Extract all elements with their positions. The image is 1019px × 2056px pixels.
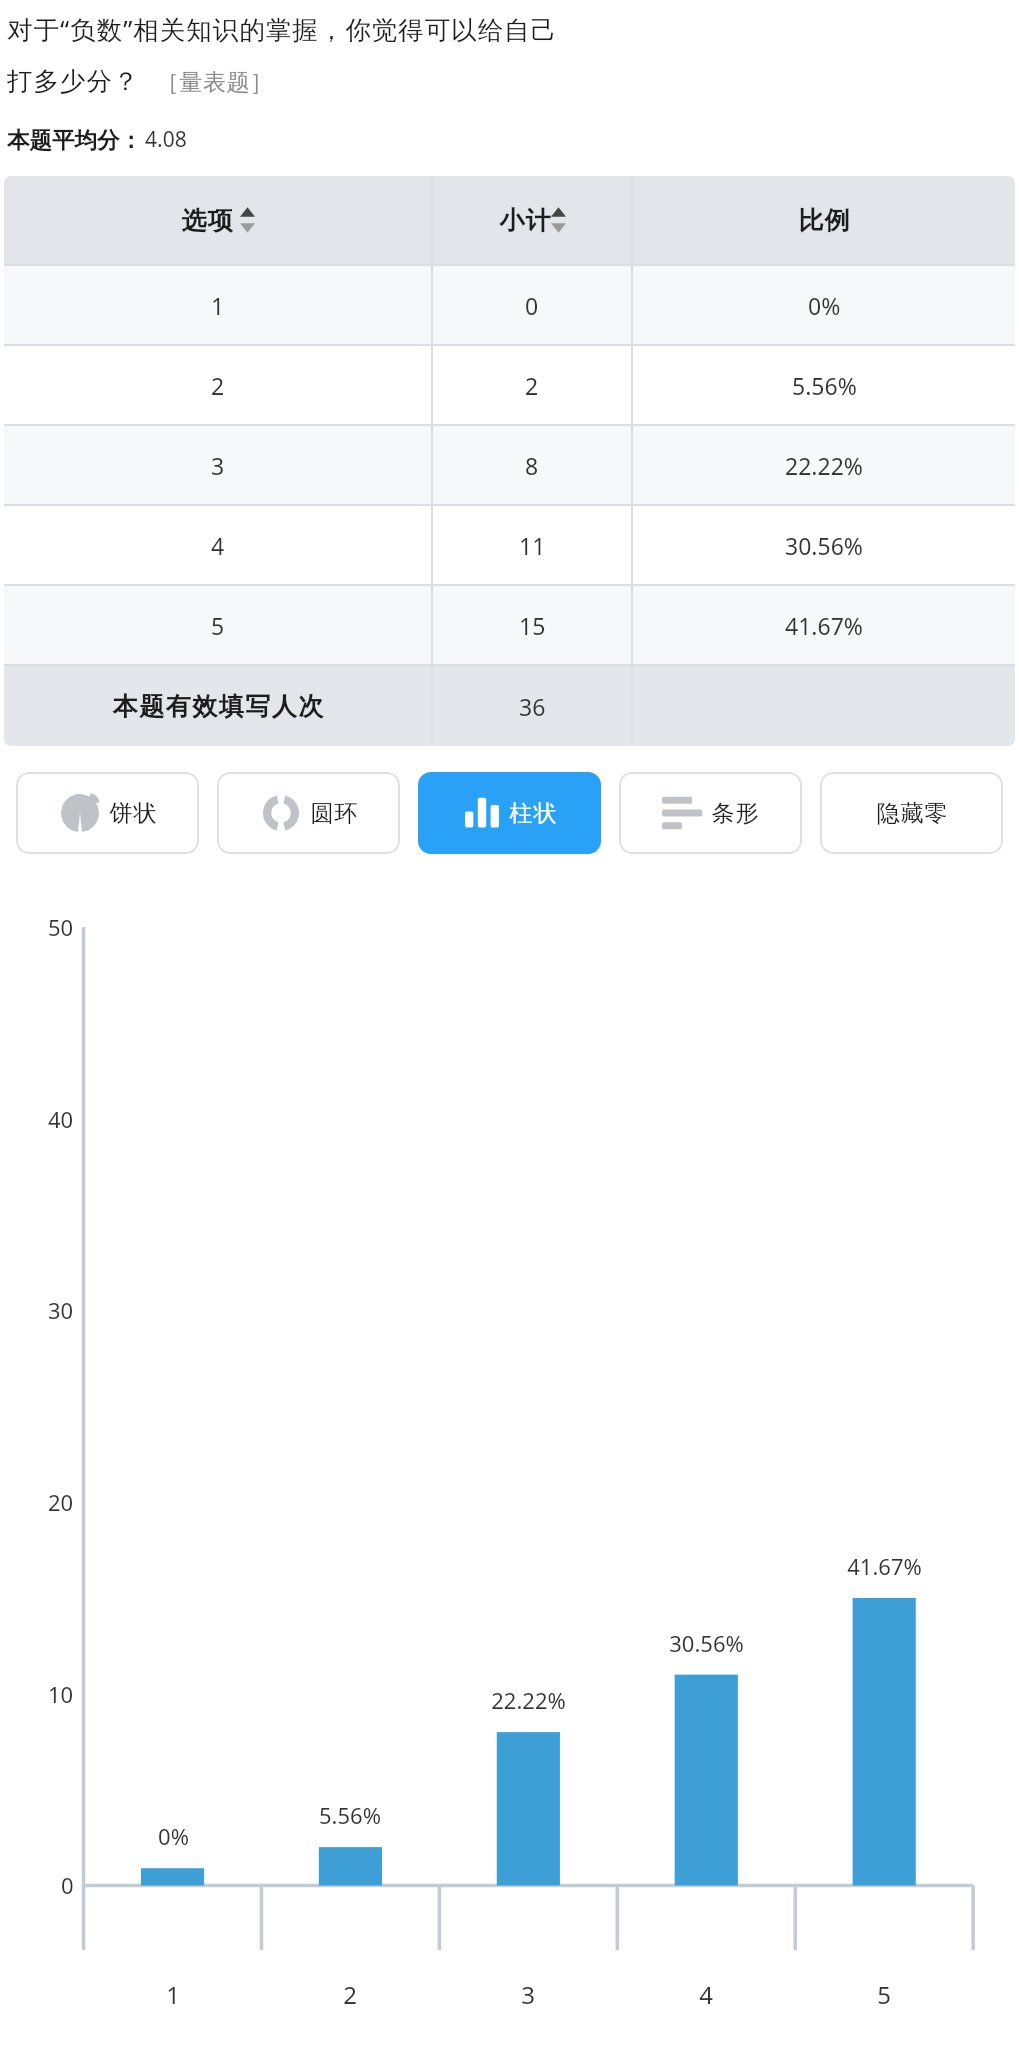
staticText: 30.56% (785, 530, 863, 561)
button[interactable]: 5 (4, 586, 1015, 664)
button[interactable]: 圆环 (217, 772, 400, 854)
staticText: 41.67% (847, 1551, 922, 1581)
staticText: 小计 (499, 205, 551, 236)
staticText: 2 (211, 370, 225, 401)
button[interactable]: 4 (4, 506, 1015, 584)
staticText: 隐藏零 (876, 799, 948, 828)
button[interactable]: 隐藏零 (820, 772, 1003, 854)
staticText: 22.22% (491, 1685, 566, 1715)
staticText: 0% (158, 1821, 189, 1851)
staticText: 柱状 (509, 799, 557, 828)
staticText: 3 (211, 450, 225, 481)
staticText: 条形 (711, 799, 759, 828)
button[interactable]: 1 (4, 266, 1015, 344)
button[interactable]: 柱状 (418, 772, 601, 854)
button[interactable]: 3 (4, 426, 1015, 504)
staticText: ［量表题］ (156, 68, 274, 97)
staticText: 圆环 (310, 799, 358, 828)
staticText: 30.56% (669, 1628, 744, 1658)
staticText: 5.56% (792, 370, 857, 401)
staticText: 1 (166, 1978, 180, 2011)
staticText: 5 (877, 1978, 891, 2011)
staticText: 11 (519, 530, 546, 561)
staticText: 饼状 (109, 799, 157, 828)
staticText: 1 (211, 290, 225, 321)
staticText: 4 (699, 1978, 713, 2011)
button[interactable]: 2 (4, 346, 1015, 424)
staticText: 30 (48, 1295, 74, 1325)
staticText: 0% (808, 290, 841, 321)
staticText: 比例 (798, 205, 850, 236)
staticText: 50 (48, 912, 74, 942)
staticText: 2 (343, 1978, 357, 2011)
staticText: 20 (48, 1487, 74, 1517)
staticText: 3 (521, 1978, 535, 2011)
staticText: 0 (61, 1870, 74, 1900)
staticText: 0 (525, 290, 539, 321)
staticText: 41.67% (785, 610, 863, 641)
staticText: 本题有效填写人次 (112, 691, 324, 722)
staticText: 对于“负数”相关知识的掌握，你觉得可以给自己 (7, 12, 558, 47)
staticText: 打多少分？ (7, 65, 140, 97)
staticText: 36 (519, 691, 546, 722)
staticText: 2 (525, 370, 539, 401)
staticText: 8 (525, 450, 539, 481)
button[interactable]: 选项 (4, 176, 1015, 264)
staticText: 10 (48, 1679, 74, 1709)
button[interactable]: 条形 (619, 772, 802, 854)
staticText: 4 (211, 530, 225, 561)
staticText: 5 (211, 610, 225, 641)
staticText: 本题平均分： (7, 126, 142, 154)
staticText: 22.22% (785, 450, 863, 481)
staticText: 15 (519, 610, 546, 641)
staticText: 40 (48, 1104, 74, 1134)
staticText: 选项 (181, 205, 233, 236)
button[interactable]: 饼状 (16, 772, 199, 854)
button[interactable]: 本题有效填写人次 (4, 666, 1015, 746)
staticText: 5.56% (319, 1800, 381, 1830)
staticText: 4.08 (145, 125, 187, 154)
